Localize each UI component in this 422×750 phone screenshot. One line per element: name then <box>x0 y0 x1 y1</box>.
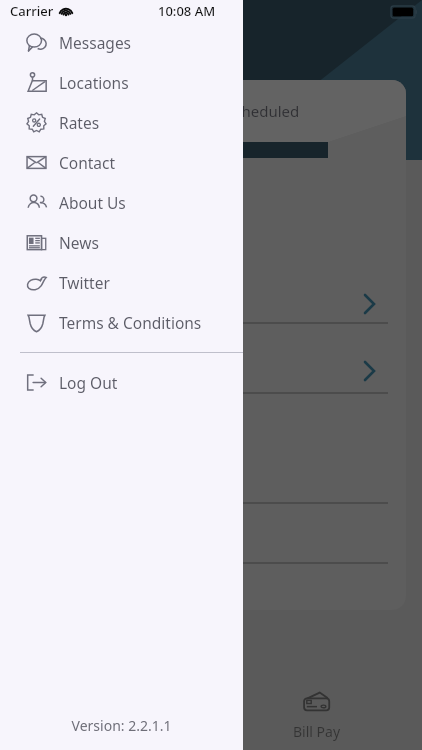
button[interactable]: Deposit <box>0 678 211 750</box>
button[interactable]: News <box>0 222 243 262</box>
button[interactable]: Log Out <box>0 362 243 402</box>
staticText: Twitter <box>59 272 110 293</box>
button[interactable]: Bill Pay <box>211 678 422 750</box>
button[interactable]: Contact <box>0 142 243 182</box>
button[interactable]: About Us <box>0 182 243 222</box>
button[interactable]: Messages <box>0 22 243 62</box>
button[interactable]: Twitter <box>0 262 243 302</box>
button[interactable]: Locations <box>0 62 243 102</box>
staticText: News <box>59 232 99 253</box>
staticText: Deposit <box>80 722 131 741</box>
staticText: Messages <box>59 32 132 53</box>
button[interactable]: Scheduled <box>226 101 300 121</box>
staticText: About Us <box>59 192 126 213</box>
button[interactable]: Terms & Conditions <box>0 302 243 342</box>
staticText: Locations <box>59 72 129 93</box>
staticText: 10:08 AM <box>158 2 216 20</box>
staticText: Terms & Conditions <box>59 312 202 333</box>
staticText: Carrier <box>10 2 54 20</box>
staticText: Rates <box>59 112 100 133</box>
staticText: Log Out <box>59 372 118 393</box>
staticText: Contact <box>59 152 116 173</box>
button[interactable]: Rates <box>0 102 243 142</box>
staticText: Bill Pay <box>293 722 341 741</box>
staticText: Version: 2.2.1.1 <box>0 716 243 735</box>
